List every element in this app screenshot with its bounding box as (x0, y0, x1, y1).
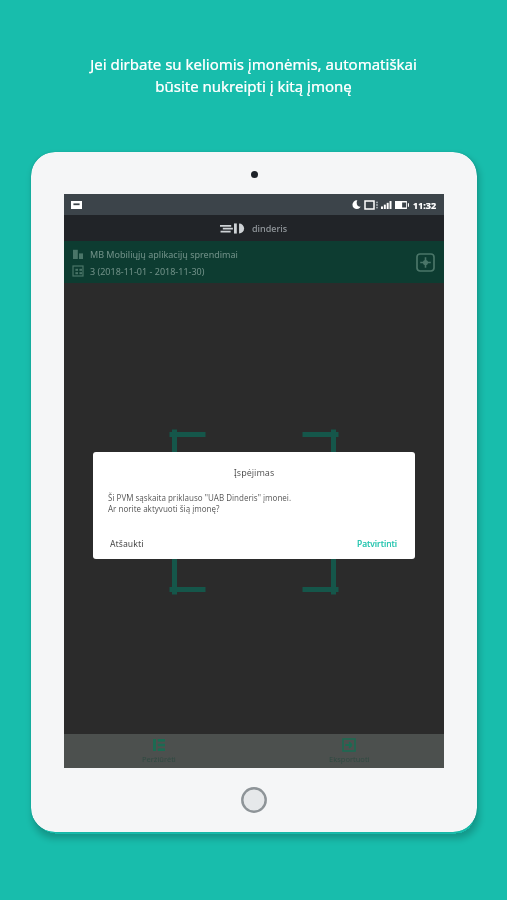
button[interactable]: Patvirtinti (352, 534, 403, 554)
button[interactable]: MB Mobiliųjų aplikacijų sprendimai (64, 241, 444, 283)
staticText: 11:32 (413, 199, 437, 211)
button[interactable]: Atšaukti (105, 534, 149, 554)
staticText: Patvirtinti (357, 538, 398, 550)
staticText: dinderis (252, 222, 288, 234)
button[interactable]: Scan settings (417, 254, 434, 271)
staticText: MB Mobiliųjų aplikacijų sprendimai (90, 248, 238, 260)
staticText: Jei dirbate su keliomis įmonėmis, automa… (16, 54, 491, 97)
button[interactable]: Eksportuoti (254, 734, 444, 768)
staticText: Peržiūrėti (142, 754, 176, 764)
staticText: Ši PVM sąskaita priklauso "UAB Dinderis"… (108, 492, 403, 515)
staticText: Eksportuoti (329, 754, 370, 764)
staticText: 3 (2018-11-01 - 2018-11-30) (90, 265, 205, 277)
staticText: Įspėjimas (93, 466, 415, 478)
button[interactable]: Peržiūrėti (64, 734, 254, 768)
staticText: Atšaukti (110, 538, 144, 550)
